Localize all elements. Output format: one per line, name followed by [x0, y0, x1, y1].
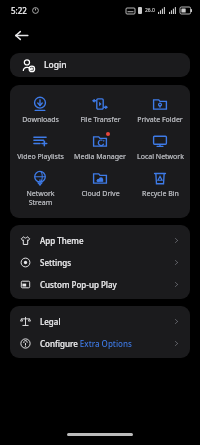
- staticText: 5:22: [11, 5, 27, 16]
- staticText: Cloud Drive: [81, 189, 120, 199]
- button[interactable]: Cloud Drive: [70, 166, 130, 203]
- button[interactable]: Recycle Bin: [130, 166, 190, 203]
- staticText: Recycle Bin: [142, 189, 179, 199]
- staticText: Downloads: [22, 115, 59, 125]
- staticText: Media Manager: [74, 152, 126, 162]
- button[interactable]: Private Folder: [130, 92, 190, 129]
- button[interactable]: Login: [10, 53, 190, 77]
- staticText: Network Stream: [26, 189, 55, 207]
- button[interactable]: App Theme: [10, 229, 190, 251]
- staticText: 26.0: [145, 7, 155, 14]
- staticText: App Theme: [40, 235, 84, 246]
- staticText: Login: [44, 59, 67, 71]
- button[interactable]: File Transfer: [70, 92, 130, 129]
- button[interactable]: Video Playlists: [10, 129, 70, 166]
- button[interactable]: Media Manager: [70, 129, 130, 166]
- button[interactable]: Custom Pop-up Play: [10, 273, 190, 295]
- staticText: Video Playlists: [17, 152, 64, 162]
- staticText: Settings: [40, 257, 72, 268]
- staticText: Custom Pop-up Play: [40, 279, 117, 290]
- button[interactable]: Downloads: [10, 92, 70, 129]
- button[interactable]: Configure Extra Options: [10, 332, 190, 354]
- button[interactable]: Back: [6, 20, 36, 50]
- button[interactable]: Legal: [10, 310, 190, 332]
- staticText: File Transfer: [80, 115, 121, 125]
- button[interactable]: Settings: [10, 251, 190, 273]
- staticText: Local Network: [137, 152, 184, 162]
- staticText: Legal: [40, 316, 61, 327]
- staticText: Private Folder: [137, 115, 183, 125]
- button[interactable]: Network Stream: [10, 166, 70, 211]
- button[interactable]: Local Network: [130, 129, 190, 166]
- staticText: Configure Extra Options: [40, 338, 132, 349]
